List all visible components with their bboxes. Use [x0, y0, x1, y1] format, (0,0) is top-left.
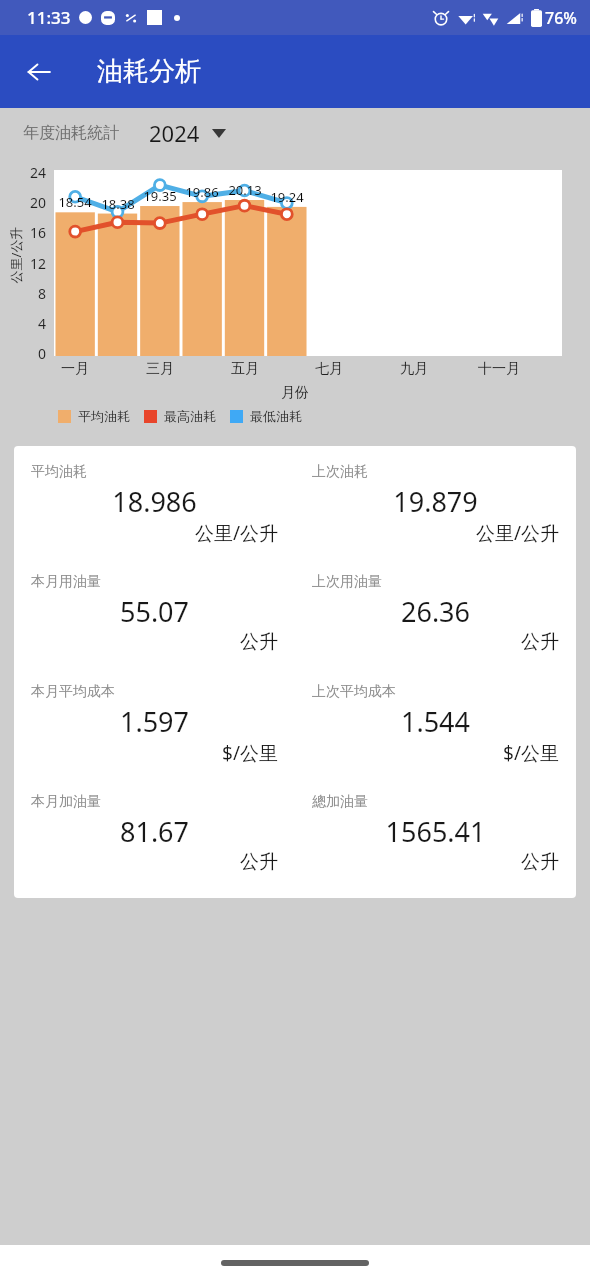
- staticText: 12: [20, 254, 46, 273]
- staticText: 上次用油量: [312, 573, 382, 591]
- staticText: 19.879: [312, 483, 559, 520]
- staticText: 1565.41: [312, 813, 559, 850]
- staticText: 81.67: [31, 813, 278, 850]
- staticText: 一月: [47, 360, 103, 378]
- staticText: 8: [20, 284, 46, 303]
- staticText: 11:33: [27, 6, 71, 29]
- staticText: 公里/公升: [312, 520, 559, 546]
- staticText: $/公里: [31, 740, 278, 766]
- staticText: 26.36: [312, 593, 559, 630]
- staticText: 55.07: [31, 593, 278, 630]
- staticText: 19.35: [139, 187, 181, 205]
- staticText: 七月: [301, 360, 357, 378]
- staticText: 18.38: [97, 195, 139, 213]
- staticText: 76%: [545, 7, 577, 29]
- staticText: 油耗分析: [97, 55, 201, 88]
- button[interactable]: 2024: [145, 114, 230, 152]
- staticText: 平均油耗: [78, 408, 130, 424]
- staticText: 月份: [0, 384, 590, 402]
- staticText: 公里/公升: [31, 520, 278, 546]
- staticText: 公升: [31, 850, 278, 874]
- button[interactable]: Back: [15, 48, 63, 96]
- staticText: 2024: [149, 118, 200, 148]
- staticText: 1.597: [31, 703, 278, 740]
- staticText: 19.24: [266, 188, 308, 206]
- staticText: 上次平均成本: [312, 683, 396, 701]
- staticText: 本月平均成本: [31, 683, 115, 701]
- staticText: 18.986: [31, 483, 278, 520]
- staticText: 上次油耗: [312, 463, 368, 481]
- staticText: 五月: [217, 360, 273, 378]
- staticText: 1.544: [312, 703, 559, 740]
- button[interactable]: 總加油量: [295, 793, 576, 898]
- staticText: 19.86: [181, 183, 223, 201]
- staticText: 平均油耗: [31, 463, 87, 481]
- button[interactable]: 本月用油量: [14, 573, 295, 683]
- staticText: 年度油耗統計: [23, 123, 119, 143]
- staticText: 16: [20, 223, 46, 242]
- button[interactable]: 本月平均成本: [14, 683, 295, 793]
- staticText: 公升: [312, 850, 559, 874]
- staticText: 總加油量: [312, 793, 368, 811]
- button[interactable]: 上次用油量: [295, 573, 576, 683]
- staticText: 4: [20, 314, 46, 333]
- button[interactable]: 本月加油量: [14, 793, 295, 898]
- staticText: 三月: [132, 360, 188, 378]
- staticText: 24: [20, 163, 46, 182]
- staticText: $/公里: [312, 740, 559, 766]
- button[interactable]: 上次平均成本: [295, 683, 576, 793]
- staticText: 0: [20, 344, 46, 363]
- staticText: 公升: [312, 630, 559, 654]
- staticText: 十一月: [471, 360, 527, 378]
- staticText: 最高油耗: [164, 408, 216, 424]
- staticText: 最低油耗: [250, 408, 302, 424]
- button[interactable]: 上次油耗: [295, 463, 576, 573]
- staticText: 20.13: [224, 181, 266, 199]
- button[interactable]: 平均油耗: [14, 463, 295, 573]
- staticText: 18.54: [54, 193, 96, 211]
- staticText: 本月用油量: [31, 573, 101, 591]
- staticText: 20: [20, 193, 46, 212]
- button[interactable]: Home: [221, 1260, 369, 1266]
- staticText: 公里/公升: [7, 210, 25, 300]
- staticText: 公升: [31, 630, 278, 654]
- staticText: 本月加油量: [31, 793, 101, 811]
- staticText: 九月: [386, 360, 442, 378]
